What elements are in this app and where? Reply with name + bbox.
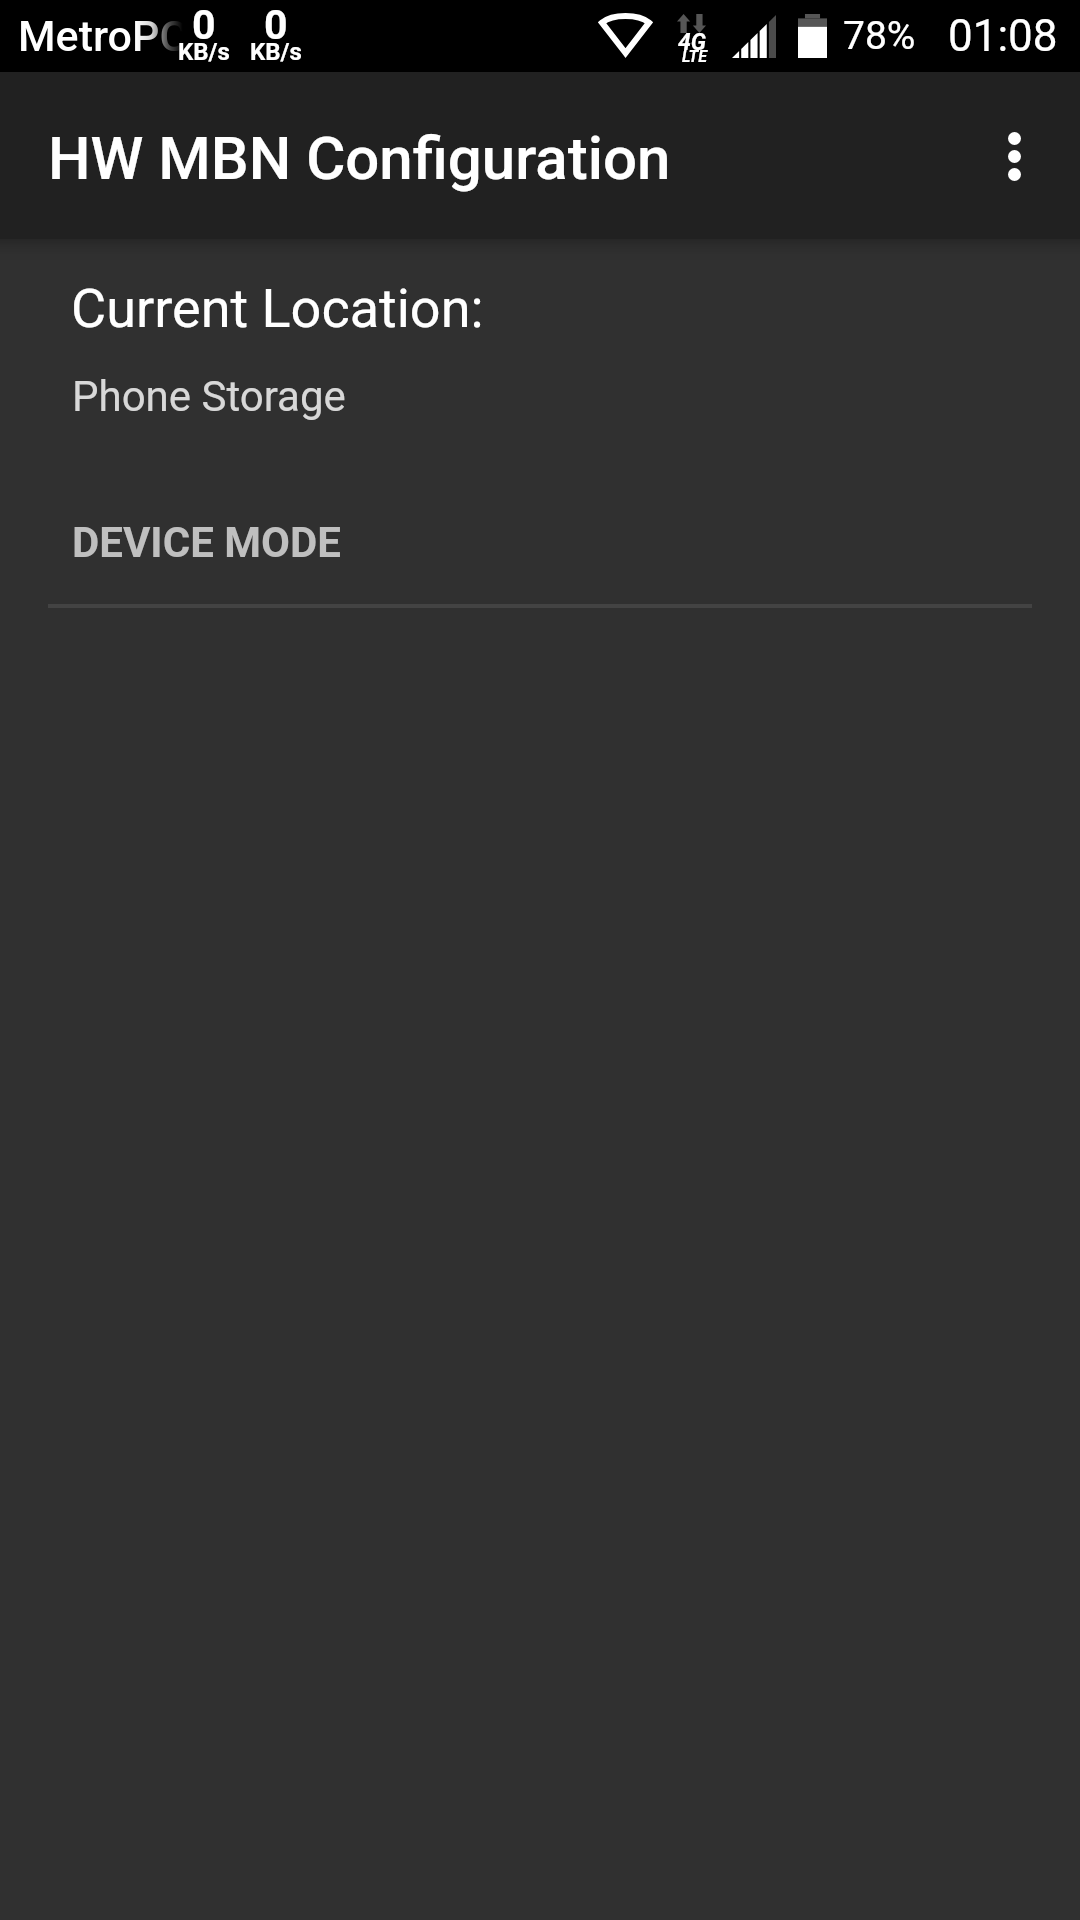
staticText: 01:08 xyxy=(948,10,1058,62)
button[interactable]: Current Location: xyxy=(0,247,1080,422)
staticText: HW MBN Configuration xyxy=(48,123,671,193)
staticText: 78% xyxy=(843,13,916,59)
staticText: 0 xyxy=(192,1,216,49)
staticText: Phone Storage xyxy=(72,372,346,421)
button[interactable]: More options xyxy=(958,100,1070,212)
staticText: DEVICE MODE xyxy=(72,518,341,567)
staticText: KB/s xyxy=(178,38,230,66)
staticText: KB/s xyxy=(250,38,302,66)
staticText: Current Location: xyxy=(71,277,484,340)
staticText: LTE xyxy=(682,47,707,66)
staticText: 4G xyxy=(678,29,707,56)
staticText: 0 xyxy=(264,1,288,49)
staticText: MetroPCS xyxy=(18,11,214,61)
